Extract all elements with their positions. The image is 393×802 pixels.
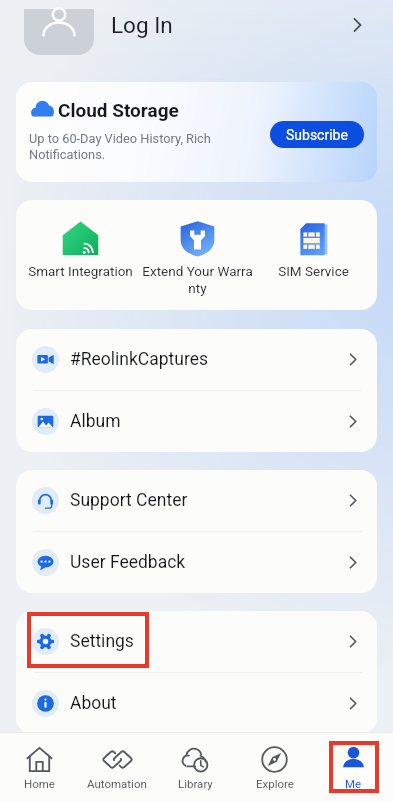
staticText: Up to 60-Day Video History, Rich Notific… bbox=[29, 131, 211, 163]
staticText: About bbox=[70, 693, 117, 714]
other: Log in bbox=[344, 11, 372, 39]
staticText: Log In bbox=[111, 12, 173, 38]
button[interactable]: Support Center bbox=[16, 470, 377, 531]
button[interactable]: About bbox=[16, 673, 377, 734]
staticText: Automation bbox=[87, 777, 147, 790]
button[interactable]: Extend Your Warra nty bbox=[139, 200, 255, 310]
staticText: Subscribe bbox=[286, 127, 348, 143]
button[interactable]: Me bbox=[314, 733, 393, 802]
button[interactable]: Automation bbox=[78, 733, 156, 802]
staticText: Album bbox=[70, 411, 121, 432]
staticText: Support Center bbox=[70, 490, 188, 511]
button[interactable]: Cloud Storage bbox=[16, 82, 377, 182]
button[interactable]: User Feedback bbox=[16, 532, 377, 593]
staticText: Library bbox=[178, 777, 213, 790]
button[interactable]: Settings bbox=[16, 611, 377, 672]
button[interactable]: Library bbox=[156, 733, 235, 802]
staticText: Settings bbox=[70, 631, 134, 652]
button[interactable]: SIM Service bbox=[255, 200, 371, 310]
button[interactable]: Subscribe bbox=[270, 121, 364, 148]
button[interactable]: Home bbox=[0, 733, 78, 802]
staticText: #ReolinkCaptures bbox=[70, 349, 209, 370]
button[interactable]: Log In bbox=[0, 0, 393, 55]
staticText: Explore bbox=[256, 777, 294, 790]
staticText: Me bbox=[345, 777, 362, 790]
staticText: Home bbox=[24, 777, 55, 790]
staticText: Cloud Storage bbox=[58, 99, 179, 121]
staticText: Smart Integration bbox=[28, 263, 133, 279]
button[interactable]: Album bbox=[16, 391, 377, 452]
button[interactable]: Smart Integration bbox=[22, 200, 139, 310]
staticText: Extend Your Warra nty bbox=[142, 263, 253, 297]
button[interactable]: Explore bbox=[235, 733, 314, 802]
staticText: SIM Service bbox=[278, 263, 349, 279]
button[interactable]: #ReolinkCaptures bbox=[16, 329, 377, 390]
staticText: User Feedback bbox=[70, 552, 186, 573]
